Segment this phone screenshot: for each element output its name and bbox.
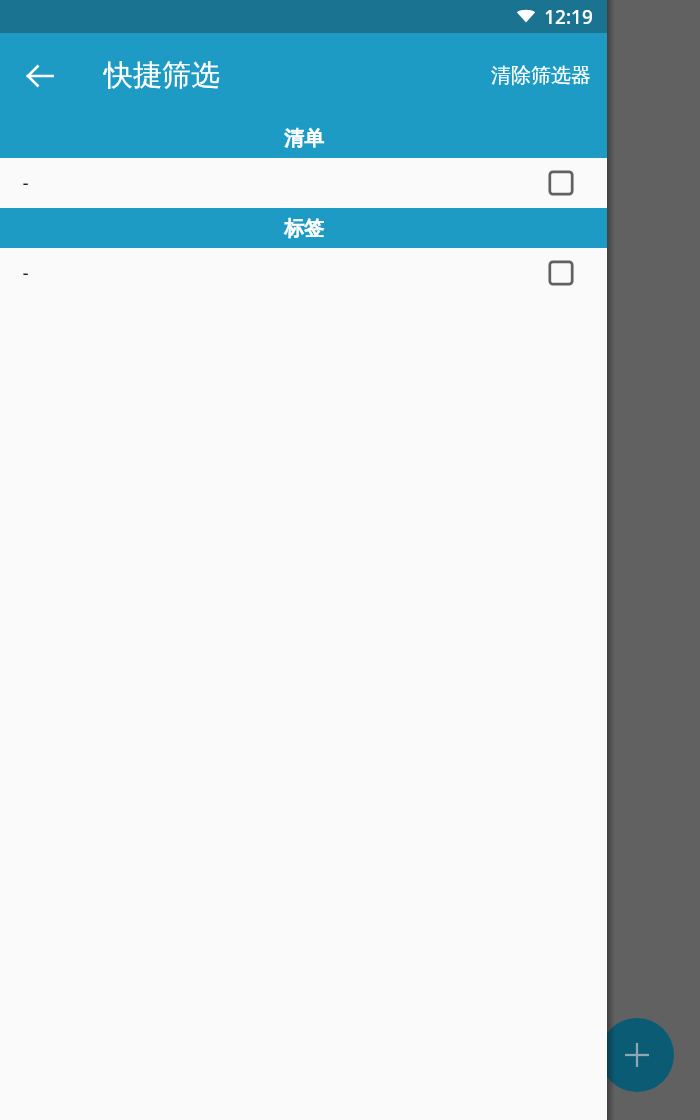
staticText: 12:19 bbox=[544, 4, 593, 30]
staticText: - bbox=[22, 170, 29, 196]
button[interactable]: - bbox=[0, 248, 607, 298]
button[interactable]: Add bbox=[600, 1018, 674, 1092]
staticText: 快捷筛选 bbox=[104, 57, 220, 94]
staticText: - bbox=[22, 260, 29, 286]
staticText: 清单 bbox=[284, 126, 324, 151]
staticText: 清除筛选器 bbox=[491, 63, 591, 88]
staticText: 标签 bbox=[284, 216, 324, 241]
button[interactable]: - bbox=[0, 158, 607, 208]
button[interactable]: 清除筛选器 bbox=[491, 63, 591, 88]
button[interactable]: Back bbox=[12, 48, 68, 104]
